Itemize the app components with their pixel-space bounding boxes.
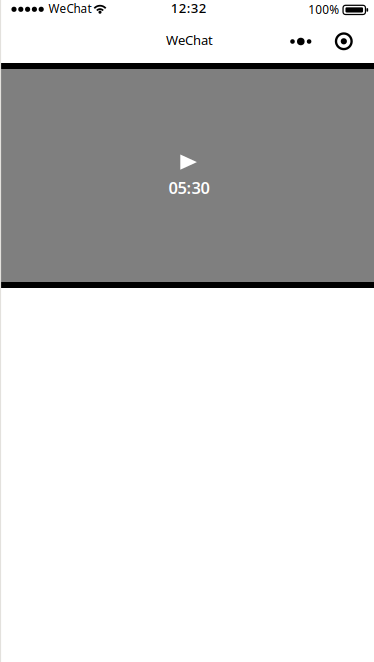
button[interactable]: Discover: [324, 21, 364, 61]
staticText: WeChat: [48, 0, 91, 16]
staticText: 100%: [308, 1, 339, 17]
staticText: 12:32: [171, 0, 207, 17]
button[interactable]: More: [279, 21, 323, 61]
staticText: WeChat: [166, 31, 213, 49]
button[interactable]: Play video, 5 minutes 30 seconds: [0, 69, 374, 282]
staticText: 05:30: [168, 176, 209, 199]
